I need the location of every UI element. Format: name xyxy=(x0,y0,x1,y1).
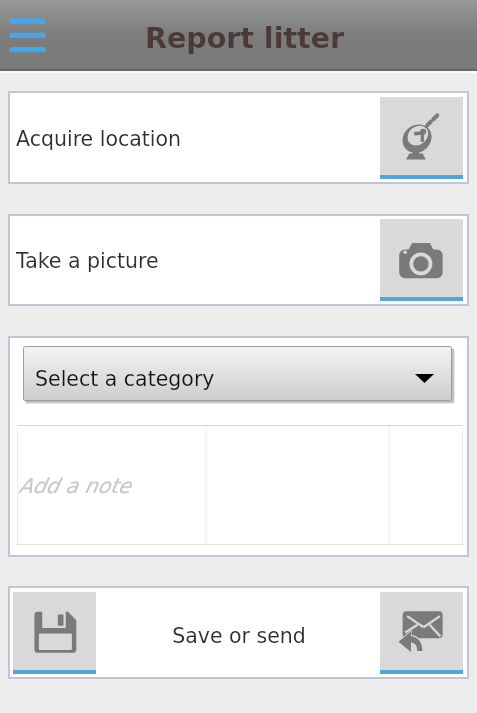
staticText: Select a category xyxy=(35,367,215,391)
button[interactable]: Open navigation menu xyxy=(4,13,51,58)
staticText: Report litter xyxy=(145,22,345,55)
button[interactable]: Send xyxy=(380,592,463,674)
button[interactable]: Take a picture xyxy=(380,219,463,301)
other: Show categories xyxy=(415,374,434,383)
staticText: Add a note xyxy=(19,474,131,498)
button[interactable]: Acquire location xyxy=(10,93,467,182)
button[interactable]: Acquire location xyxy=(380,97,463,179)
button[interactable]: Take a picture xyxy=(10,216,467,304)
staticText: Acquire location xyxy=(16,127,182,151)
button[interactable]: Save xyxy=(13,592,96,674)
button[interactable]: Add a note xyxy=(17,425,463,545)
staticText: Save or send xyxy=(172,624,306,648)
button[interactable]: Select a category xyxy=(23,346,455,404)
staticText: Take a picture xyxy=(16,249,159,273)
